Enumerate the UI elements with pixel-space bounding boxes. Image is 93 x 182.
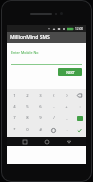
- button[interactable]: 4: [7, 101, 21, 112]
- button[interactable]: 5: [21, 101, 34, 112]
- button[interactable]: 3: [34, 90, 47, 101]
- staticText: MillionMind SMS: [10, 34, 50, 41]
- button[interactable]: Emoji: [47, 124, 60, 136]
- button[interactable]: +: [60, 101, 73, 112]
- button[interactable]: #: [34, 124, 47, 136]
- staticText: -: [53, 104, 55, 110]
- staticText: 6: [39, 104, 42, 110]
- button[interactable]: Done: [73, 124, 86, 136]
- button[interactable]: 7: [7, 112, 21, 124]
- staticText: +: [65, 104, 68, 110]
- staticText: 7: [13, 115, 16, 121]
- staticText: 12:00: [75, 27, 84, 31]
- button[interactable]: 0: [21, 124, 34, 136]
- button[interactable]: NEXT: [58, 68, 82, 76]
- button[interactable]: 8: [21, 112, 34, 124]
- staticText: *: [13, 127, 16, 133]
- staticText: NEXT: [66, 70, 75, 75]
- staticText: /: [53, 115, 55, 121]
- button[interactable]: Recent apps: [20, 137, 29, 146]
- staticText: 0: [26, 127, 29, 133]
- staticText: #: [39, 127, 42, 133]
- button[interactable]: Delete: [73, 90, 86, 101]
- staticText: 5: [26, 104, 29, 110]
- staticText: Enter Mobile No: [11, 50, 39, 55]
- button[interactable]: ): [60, 90, 73, 101]
- button[interactable]: (: [47, 90, 60, 101]
- staticText: 9: [39, 115, 42, 121]
- staticText: ): [66, 93, 68, 99]
- button[interactable]: *: [7, 124, 21, 136]
- staticText: (: [53, 93, 55, 99]
- staticText: .: [66, 127, 68, 133]
- button[interactable]: 6: [34, 101, 47, 112]
- staticText: 1: [13, 93, 16, 99]
- button[interactable]: /: [47, 112, 60, 124]
- staticText: ,: [66, 115, 68, 121]
- staticText: 4: [13, 104, 16, 110]
- button[interactable]: Home: [42, 137, 51, 146]
- staticText: :: [79, 104, 81, 110]
- staticText: 8: [26, 115, 29, 121]
- button[interactable]: 2: [21, 90, 34, 101]
- button[interactable]: Enter: [73, 112, 86, 124]
- button[interactable]: Back: [64, 137, 73, 146]
- staticText: 2: [26, 93, 29, 99]
- button[interactable]: 1: [7, 90, 21, 101]
- button[interactable]: 9: [34, 112, 47, 124]
- staticText: 3: [39, 93, 42, 99]
- button[interactable]: MillionMind SMS: [7, 32, 86, 43]
